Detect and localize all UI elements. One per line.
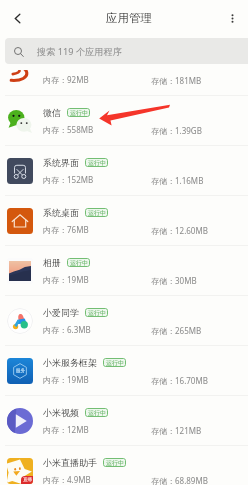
button[interactable]: 应用商店 <box>0 46 248 95</box>
staticText: 小爱同学 <box>43 307 79 318</box>
staticText: 内存：12MB <box>43 424 89 435</box>
staticText: 运行中 <box>106 359 124 367</box>
staticText: 应用管理 <box>106 11 152 25</box>
button[interactable]: 小爱同学 <box>0 296 248 345</box>
staticText: 存储：30MB <box>151 275 197 286</box>
staticText: 运行中 <box>106 459 124 467</box>
staticText: 存储：12.60MB <box>151 225 208 236</box>
staticText: 内存：4.9MB <box>43 474 91 485</box>
staticText: 存储：1.16MB <box>151 175 204 186</box>
staticText: 内存：19MB <box>43 274 89 285</box>
staticText: 存储：265MB <box>151 325 202 336</box>
button[interactable]: 小米视频 <box>0 396 248 445</box>
staticText: 运行中 <box>88 59 106 67</box>
button[interactable]: 服务 <box>0 346 248 395</box>
staticText: 相册 <box>43 257 61 268</box>
staticText: 系统界面 <box>43 157 79 168</box>
staticText: 内存：76MB <box>43 224 89 235</box>
staticText: 运行中 <box>88 409 106 417</box>
staticText: 内存：6.3MB <box>43 324 91 335</box>
staticText: 运行中 <box>70 109 88 117</box>
staticText: 小米直播助手 <box>43 457 97 468</box>
staticText: 存储：16.70MB <box>151 375 208 386</box>
button[interactable]: More options <box>219 5 245 31</box>
staticText: 运行中 <box>70 259 88 267</box>
staticText: 搜索 119 个应用程序 <box>37 45 122 58</box>
staticText: 存储：68.89MB <box>151 475 208 485</box>
button[interactable]: 系统界面 <box>0 146 248 195</box>
staticText: 系统桌面 <box>43 207 79 218</box>
staticText: 运行中 <box>88 309 106 317</box>
staticText: 存储：181MB <box>151 75 202 86</box>
staticText: 直播 <box>23 477 32 483</box>
staticText: 应用商店 <box>43 57 79 68</box>
staticText: 小米服务框架 <box>43 357 97 368</box>
staticText: 小米视频 <box>43 407 79 418</box>
staticText: 内存：19MB <box>43 374 89 385</box>
staticText: 运行中 <box>88 159 106 167</box>
staticText: 运行中 <box>88 209 106 217</box>
button[interactable]: 直播 <box>0 446 248 485</box>
staticText: 存储：121MB <box>151 425 202 436</box>
staticText: 服务 <box>16 368 25 374</box>
button[interactable]: Back <box>3 4 31 32</box>
button[interactable]: 相册 <box>0 246 248 295</box>
button[interactable]: 搜索 119 个应用程序 <box>5 38 248 64</box>
staticText: 微信 <box>43 107 61 118</box>
button[interactable]: 微信 <box>0 96 248 145</box>
staticText: 存储：1.39GB <box>151 125 202 136</box>
button[interactable]: 系统桌面 <box>0 196 248 245</box>
staticText: 内存：558MB <box>43 124 94 135</box>
staticText: 内存：92MB <box>43 74 89 85</box>
staticText: 内存：152MB <box>43 174 94 185</box>
